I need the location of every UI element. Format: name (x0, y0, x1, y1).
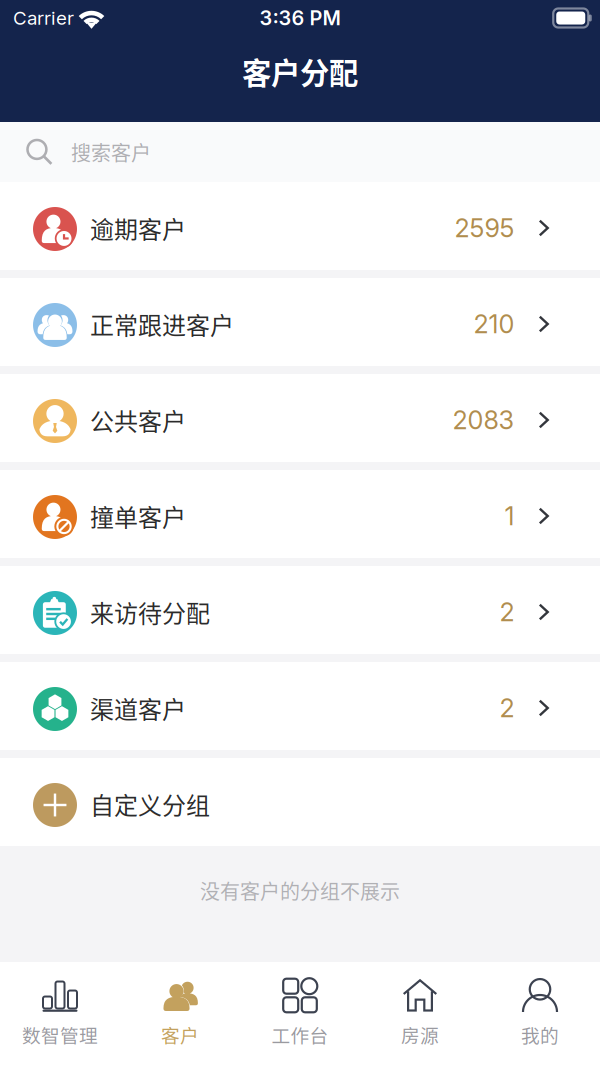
button[interactable]: 搜索客户 (0, 122, 600, 182)
button[interactable]: 来访待分配 (0, 566, 600, 654)
staticText: 2 (499, 597, 514, 627)
staticText: 房源 (401, 1021, 439, 1048)
staticText: 公共客户 (90, 403, 186, 437)
staticText: 数智管理 (22, 1021, 98, 1048)
staticText: 撞单客户 (90, 499, 186, 533)
staticText: 3:36 PM (259, 6, 340, 30)
staticText: 工作台 (271, 1021, 328, 1048)
button[interactable]: 工作台 (240, 962, 360, 1067)
staticText: 2595 (454, 213, 514, 243)
staticText: 没有客户的分组不展示 (200, 876, 400, 905)
button[interactable]: 客户 (120, 962, 240, 1067)
button[interactable]: 公共客户 (0, 374, 600, 462)
button[interactable]: 逾期客户 (0, 182, 600, 270)
button[interactable]: 撞单客户 (0, 470, 600, 558)
staticText: 1 (504, 501, 514, 531)
staticText: 渠道客户 (90, 691, 186, 725)
staticText: 自定义分组 (90, 787, 210, 821)
staticText: 逾期客户 (90, 211, 186, 245)
button[interactable]: 数智管理 (0, 962, 120, 1067)
button[interactable]: 自定义分组 (0, 758, 600, 846)
staticText: 搜索客户 (71, 137, 151, 166)
staticText: 我的 (521, 1021, 559, 1048)
button[interactable]: 正常跟进客户 (0, 278, 600, 366)
staticText: 客户分配 (242, 50, 358, 92)
staticText: 正常跟进客户 (90, 307, 234, 341)
button[interactable]: 我的 (480, 962, 600, 1067)
staticText: 2 (499, 693, 514, 723)
staticText: 2083 (452, 405, 514, 435)
button[interactable]: 渠道客户 (0, 662, 600, 750)
staticText: 客户 (161, 1021, 199, 1048)
button[interactable]: 房源 (360, 962, 480, 1067)
staticText: Carrier (13, 7, 74, 29)
staticText: 来访待分配 (90, 595, 210, 629)
staticText: 210 (473, 309, 514, 339)
